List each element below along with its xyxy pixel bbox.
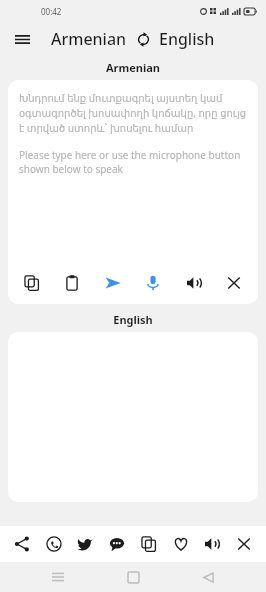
button[interactable]: Home xyxy=(116,562,150,592)
button[interactable]: Favorite xyxy=(167,529,195,559)
button[interactable]: Share xyxy=(8,529,36,559)
button[interactable]: Speak xyxy=(198,529,226,559)
button[interactable]: Copy xyxy=(135,529,163,559)
button[interactable]: Paste xyxy=(58,268,86,298)
button[interactable]: Clear xyxy=(220,268,248,298)
staticText: Խնդրում ենք մուտքագրել այստեղ կամ օգտագո… xyxy=(19,91,247,135)
button[interactable]: Speak xyxy=(180,268,208,298)
button[interactable]: Microphone xyxy=(139,268,167,298)
button[interactable]: Armenian xyxy=(51,28,127,50)
button[interactable]: WhatsApp xyxy=(40,529,68,559)
staticText: Armenian xyxy=(0,60,266,75)
button[interactable]: SMS xyxy=(103,529,131,559)
button[interactable]: Close xyxy=(230,529,258,559)
button[interactable]: Send xyxy=(99,268,127,298)
staticText: 00:42 xyxy=(41,6,62,17)
staticText: English xyxy=(0,312,266,327)
button[interactable]: English xyxy=(159,28,215,50)
button[interactable]: Copy xyxy=(18,268,46,298)
button[interactable]: Menu xyxy=(9,26,35,52)
staticText: Please type here or use the microphone b… xyxy=(19,148,247,176)
button[interactable]: Twitter xyxy=(71,529,99,559)
button[interactable]: Swap languages xyxy=(133,29,153,49)
button[interactable]: Recent apps xyxy=(41,562,75,592)
button[interactable]: Back xyxy=(191,562,225,592)
